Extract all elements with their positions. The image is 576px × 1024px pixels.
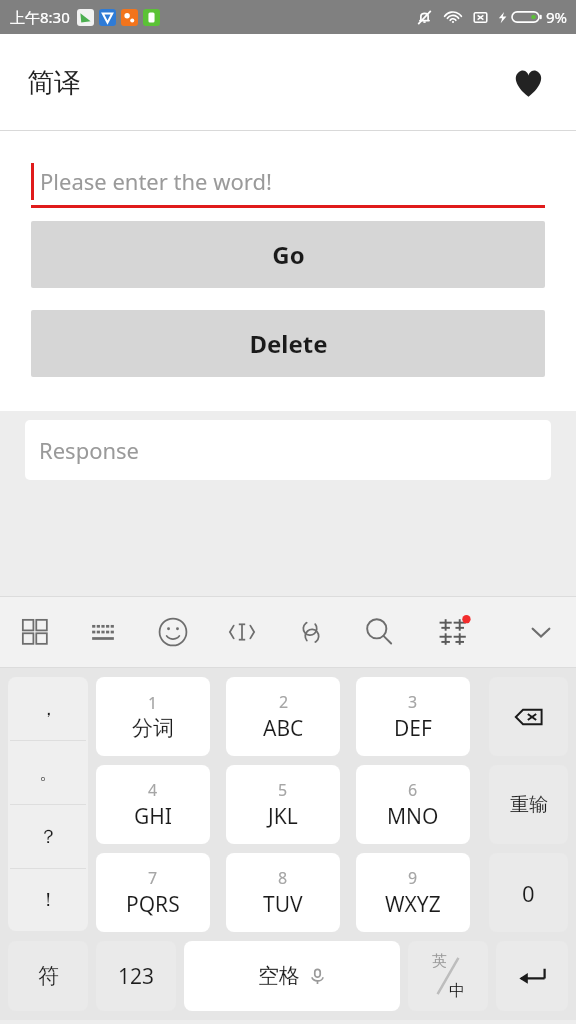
- button[interactable]: Favorite: [506, 61, 550, 105]
- staticText: 8: [278, 867, 288, 889]
- staticText: PQRS: [126, 890, 180, 919]
- button[interactable]: 3: [356, 677, 470, 756]
- staticText: 2: [279, 691, 289, 713]
- staticText: 简译: [27, 66, 81, 100]
- staticText: ABC: [263, 714, 304, 743]
- button[interactable]: 9: [356, 853, 470, 932]
- button[interactable]: Store: [429, 608, 477, 656]
- button[interactable]: Enter: [496, 941, 568, 1011]
- staticText: ？: [39, 825, 58, 849]
- button[interactable]: 空格: [184, 941, 400, 1011]
- button[interactable]: 。: [8, 741, 88, 804]
- button[interactable]: Delete: [31, 310, 545, 377]
- staticText: 5: [278, 779, 288, 801]
- button[interactable]: Emoji: [149, 608, 197, 656]
- button[interactable]: 7: [96, 853, 210, 932]
- button[interactable]: 5: [226, 765, 340, 844]
- staticText: 上午8:30: [10, 7, 70, 27]
- button[interactable]: Language toggle: [408, 941, 488, 1011]
- button[interactable]: 8: [226, 853, 340, 932]
- staticText: ！: [39, 888, 58, 912]
- staticText: Delete: [249, 327, 328, 360]
- button[interactable]: Cursor: [218, 608, 266, 656]
- button[interactable]: ！: [8, 869, 88, 931]
- staticText: 分词: [132, 715, 174, 741]
- staticText: GHI: [134, 802, 172, 831]
- button[interactable]: Go: [31, 221, 545, 288]
- button[interactable]: Keyboard: [79, 608, 127, 656]
- staticText: 空格: [258, 963, 300, 989]
- staticText: 。: [39, 761, 58, 785]
- staticText: MNO: [387, 802, 439, 831]
- staticText: 4: [148, 779, 158, 801]
- staticText: TUV: [263, 890, 303, 919]
- staticText: ，: [39, 697, 58, 721]
- button[interactable]: 0: [489, 853, 568, 932]
- button[interactable]: Collapse: [517, 608, 565, 656]
- staticText: 6: [408, 779, 418, 801]
- button[interactable]: 4: [96, 765, 210, 844]
- staticText: 3: [408, 691, 418, 713]
- button[interactable]: Response: [25, 420, 551, 480]
- staticText: 9%: [546, 7, 568, 27]
- staticText: WXYZ: [385, 890, 441, 919]
- staticText: Please enter the word!: [40, 166, 272, 196]
- button[interactable]: 123: [96, 941, 176, 1011]
- staticText: 重输: [510, 793, 548, 817]
- button[interactable]: Search: [355, 608, 403, 656]
- button[interactable]: Clipboard: [287, 608, 335, 656]
- staticText: 中: [449, 981, 465, 1001]
- button[interactable]: ，: [8, 677, 88, 740]
- button[interactable]: ？: [8, 805, 88, 868]
- staticText: Go: [272, 238, 305, 271]
- button[interactable]: 1: [96, 677, 210, 756]
- staticText: 123: [118, 962, 155, 991]
- staticText: Response: [39, 435, 140, 465]
- staticText: DEF: [394, 714, 432, 743]
- staticText: 0: [522, 878, 535, 908]
- staticText: 符: [38, 963, 59, 989]
- button[interactable]: Backspace: [489, 677, 568, 756]
- button[interactable]: Layouts: [11, 608, 59, 656]
- button[interactable]: 重输: [489, 765, 568, 844]
- button[interactable]: 符: [8, 941, 88, 1011]
- staticText: 1: [148, 692, 158, 714]
- button[interactable]: 2: [226, 677, 340, 756]
- button[interactable]: 6: [356, 765, 470, 844]
- staticText: 7: [148, 867, 158, 889]
- staticText: 英: [432, 952, 447, 971]
- staticText: JKL: [268, 802, 298, 831]
- staticText: 9: [408, 867, 418, 889]
